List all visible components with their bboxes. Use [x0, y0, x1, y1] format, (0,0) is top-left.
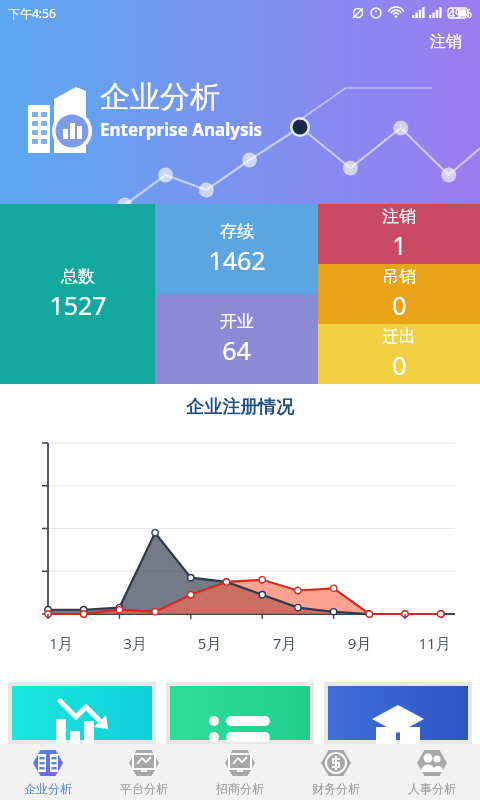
button[interactable]: 注销	[426, 28, 466, 56]
button[interactable]: 开业	[155, 294, 318, 384]
staticText: 注销	[430, 32, 462, 52]
button[interactable]: 平台分析	[96, 744, 192, 800]
button[interactable]: 数据卡片	[328, 686, 468, 740]
staticText: 开业	[220, 311, 254, 332]
staticText: 吊销	[382, 266, 416, 287]
button[interactable]: 企业分析卡片	[12, 686, 152, 740]
staticText: 招商分析	[216, 781, 264, 796]
staticText: Enterprise Analysis	[100, 118, 263, 141]
button[interactable]: 迁出	[318, 324, 480, 384]
staticText: 1462	[208, 243, 266, 277]
staticText: 平台分析	[120, 781, 168, 796]
staticText: 存续	[220, 221, 254, 242]
button[interactable]: 招商分析	[192, 744, 288, 800]
staticText: 总数	[61, 266, 95, 287]
button[interactable]: 存续	[155, 204, 318, 294]
button[interactable]: 列表卡片	[170, 686, 310, 740]
button[interactable]: 财务分析	[288, 744, 384, 800]
staticText: 注销	[382, 206, 416, 227]
staticText: 0	[392, 348, 407, 382]
staticText: 11月	[397, 633, 472, 653]
staticText: 1	[392, 228, 407, 262]
staticText: 49%	[448, 5, 472, 21]
button[interactable]: 吊销	[318, 264, 480, 324]
staticText: 1527	[49, 288, 107, 322]
button[interactable]: 总数	[0, 204, 155, 384]
staticText: 9月	[322, 633, 397, 653]
staticText: 财务分析	[312, 781, 360, 796]
staticText: 迁出	[382, 326, 416, 347]
staticText: 企业分析	[24, 781, 72, 796]
button[interactable]: 人事分析	[384, 744, 480, 800]
staticText: 0	[392, 288, 407, 322]
staticText: 1月	[24, 633, 98, 653]
staticText: 企业注册情况	[0, 396, 480, 419]
button[interactable]: 企业分析	[0, 744, 96, 800]
staticText: 5月	[172, 633, 247, 653]
staticText: 企业分析	[100, 78, 220, 116]
staticText: 人事分析	[408, 781, 456, 796]
staticText: 3月	[98, 633, 172, 653]
staticText: 7月	[247, 633, 322, 653]
staticText: 下午4:56	[8, 5, 56, 21]
button[interactable]: 注销	[318, 204, 480, 264]
staticText: 64	[222, 333, 251, 367]
